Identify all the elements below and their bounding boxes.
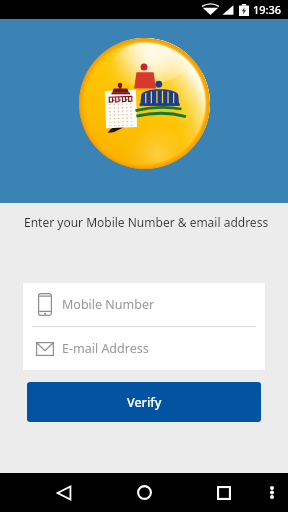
staticText: Verify [127,394,162,411]
staticText: Mobile Number [62,296,155,313]
staticText: E-mail Address [62,340,149,357]
staticText: Enter your Mobile Number & email address [24,214,269,230]
button[interactable]: Mobile Number [23,283,265,326]
button[interactable]: Home [124,473,164,512]
button[interactable]: Recent apps [204,473,244,512]
button[interactable]: More options [254,473,288,512]
staticText: 19:36 [253,2,282,17]
button[interactable]: E-mail Address [23,327,265,370]
button[interactable]: Verify [27,382,261,422]
button[interactable]: Back [44,473,84,512]
